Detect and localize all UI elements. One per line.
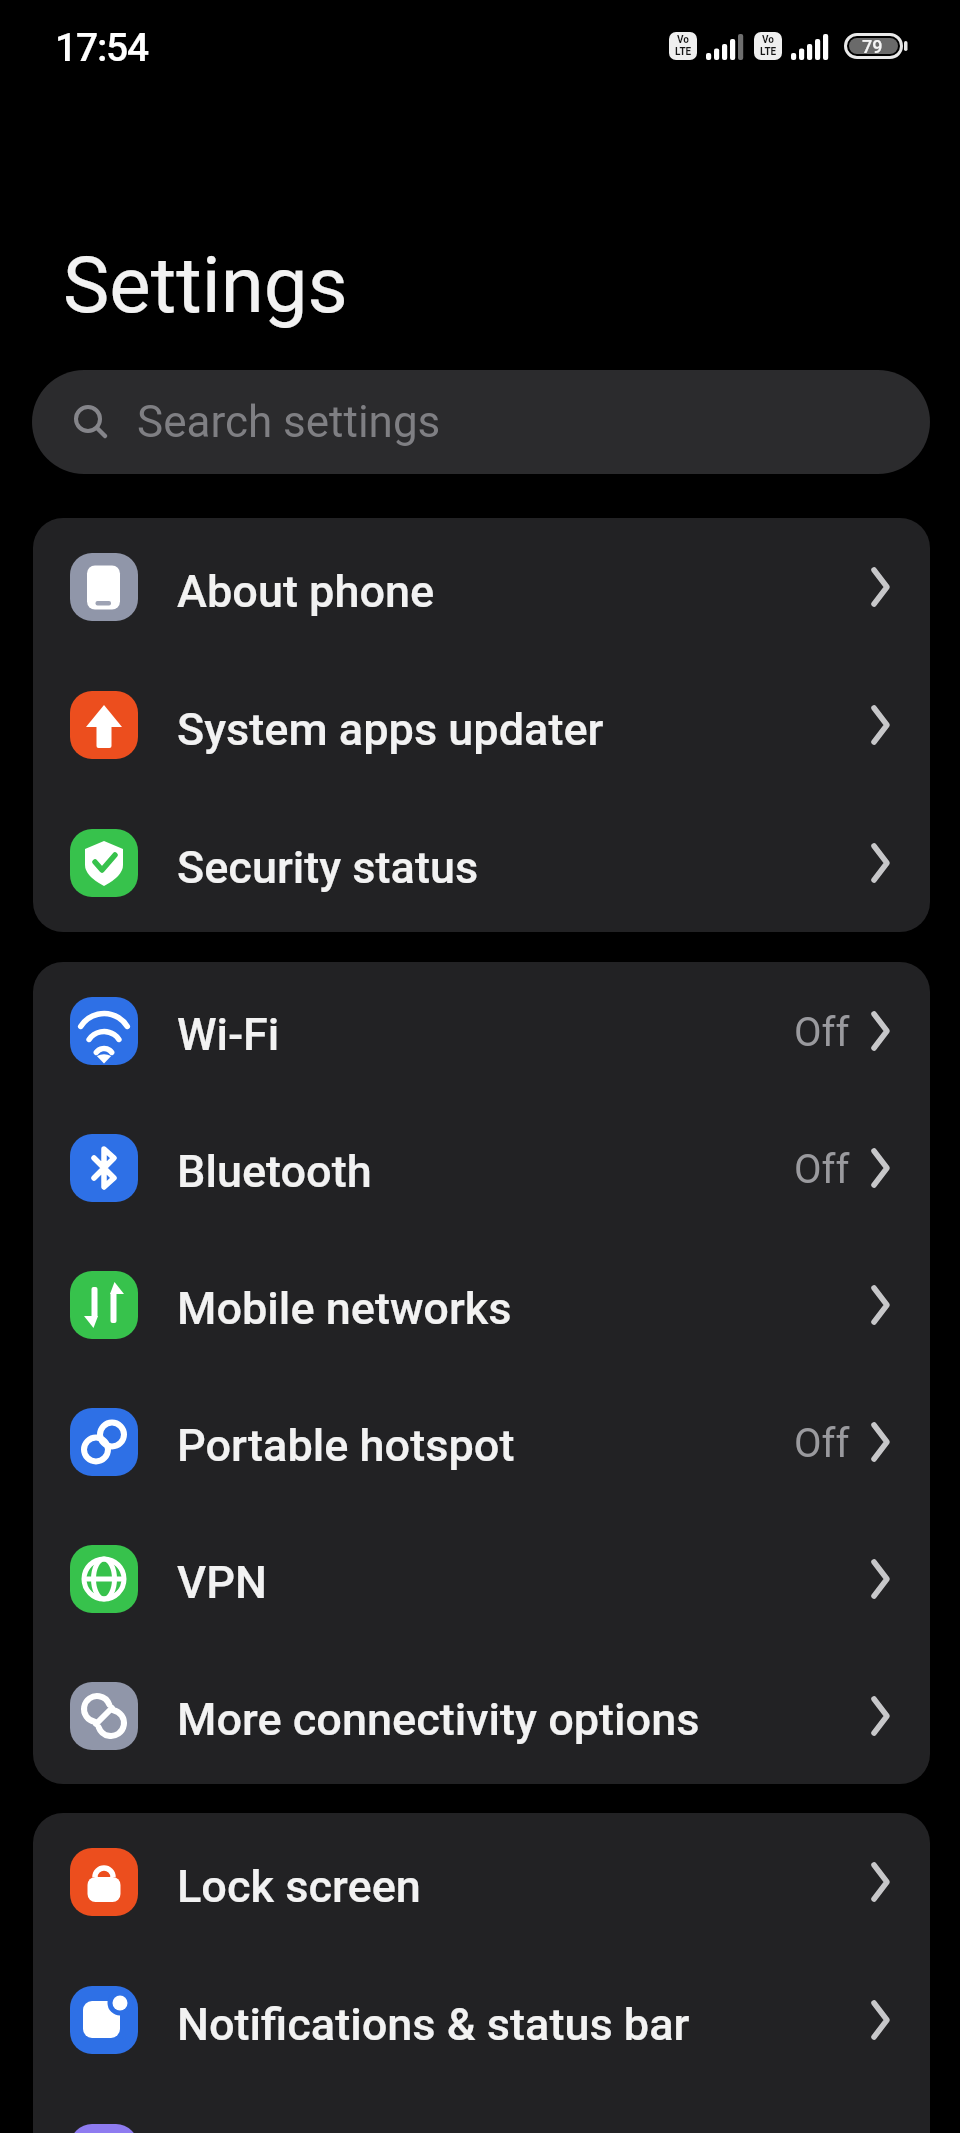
staticText: Search settings	[137, 396, 441, 448]
staticText: Security status	[177, 841, 479, 894]
button[interactable]: System apps updater	[33, 656, 930, 794]
staticText: Mobile networks	[177, 1282, 512, 1335]
button[interactable]: About phone	[33, 518, 930, 656]
button[interactable]: VPN	[33, 1510, 930, 1647]
button[interactable]: Bluetooth	[33, 1099, 930, 1236]
staticText: More connectivity options	[177, 1693, 700, 1746]
button[interactable]: Notifications & status bar	[33, 1951, 930, 2089]
staticText: 17:54	[55, 25, 149, 71]
staticText: 79	[862, 36, 883, 57]
staticText: Notifications & status bar	[177, 1998, 690, 2051]
staticText: Bluetooth	[177, 1145, 372, 1198]
staticText: Portable hotspot	[177, 1419, 515, 1472]
staticText: Settings	[63, 240, 348, 331]
button[interactable]: Lock screen	[33, 1813, 930, 1951]
staticText: Off	[794, 1420, 850, 1467]
button[interactable]: Security status	[33, 794, 930, 932]
staticText: Off	[794, 1009, 850, 1056]
staticText: Vo	[677, 34, 689, 46]
staticText: VPN	[177, 1556, 267, 1609]
button[interactable]: Mobile networks	[33, 1236, 930, 1373]
staticText: LTE	[675, 46, 692, 58]
staticText: System apps updater	[177, 703, 604, 756]
staticText: Lock screen	[177, 1860, 421, 1913]
staticText: LTE	[760, 46, 777, 58]
button[interactable]: Wi-Fi	[33, 962, 930, 1099]
staticText: Vo	[762, 34, 774, 46]
staticText: Wi-Fi	[177, 1008, 280, 1061]
button[interactable]: Search settings	[32, 370, 930, 474]
staticText: About phone	[177, 565, 435, 618]
button[interactable]: Home screen	[33, 2089, 930, 2133]
button[interactable]: More connectivity options	[33, 1647, 930, 1784]
staticText: Off	[794, 1146, 850, 1193]
button[interactable]: Portable hotspot	[33, 1373, 930, 1510]
